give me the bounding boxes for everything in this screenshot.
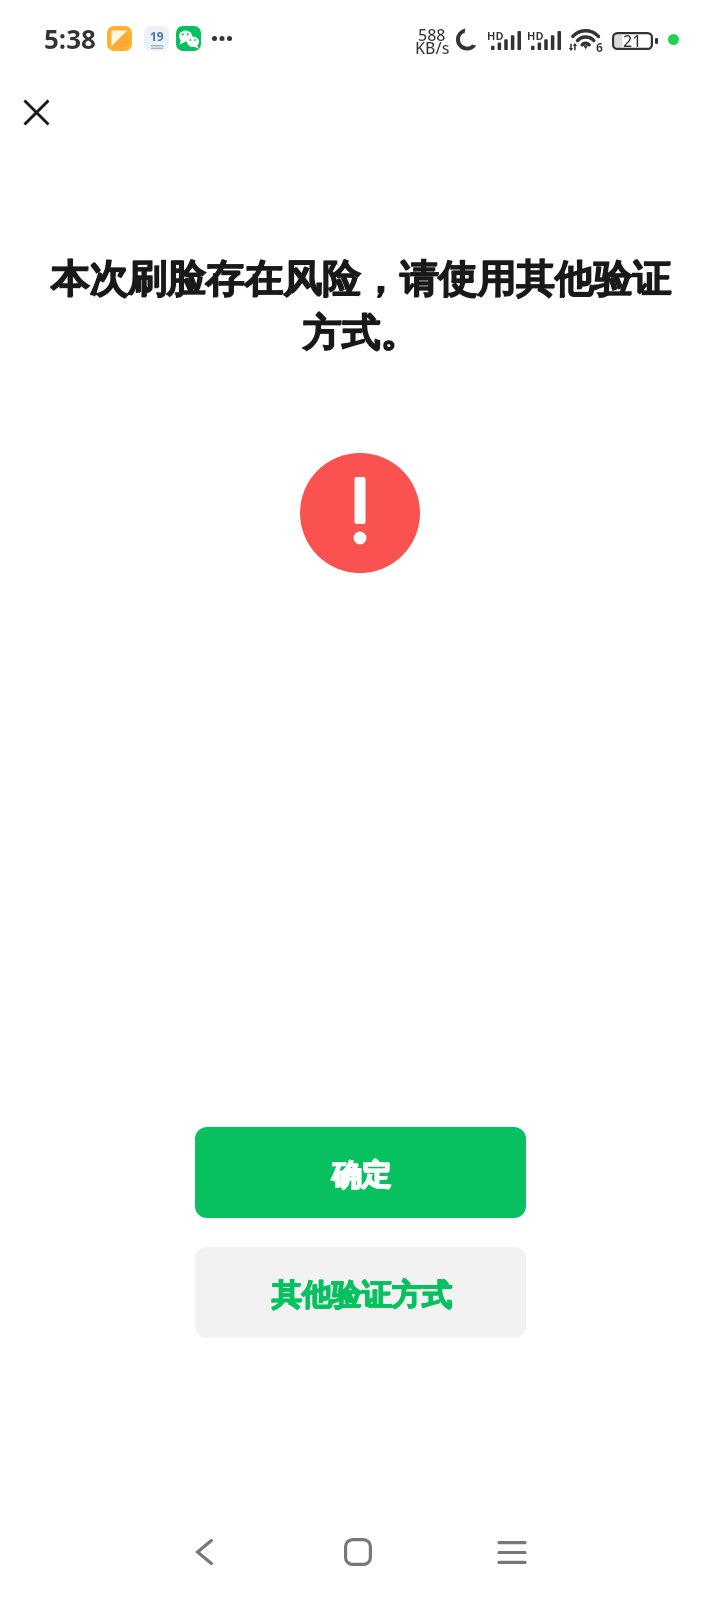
staticText: 确定 (332, 1156, 392, 1194)
staticText: 本次刷脸存在风险，请使用其他验证方式。 (38, 255, 682, 358)
staticText: 本次刷脸存在风险，请使用其他验证方式。 (39, 255, 683, 358)
staticText: 其他验证方式 (271, 1276, 451, 1314)
staticText: HD (527, 28, 544, 43)
staticText: 确定 (331, 1157, 391, 1195)
button[interactable]: Close (10, 86, 62, 138)
button[interactable]: 确定 (195, 1127, 526, 1218)
staticText: HD (487, 28, 504, 43)
staticText: 19 (150, 28, 164, 44)
button[interactable]: 其他验证方式 (195, 1247, 526, 1338)
button[interactable]: Recent apps (474, 1514, 550, 1590)
staticText: 本次刷脸存在风险，请使用其他验证方式。 (38, 256, 682, 359)
staticText: 21 (623, 30, 642, 52)
staticText: 其他验证方式 (272, 1276, 452, 1314)
staticText: 确定 (331, 1156, 391, 1194)
button[interactable]: Back (166, 1514, 242, 1590)
staticText: KB/s (415, 37, 450, 59)
staticText: 5:38 (44, 21, 96, 56)
staticText: 其他验证方式 (271, 1277, 451, 1315)
staticText: 6 (596, 39, 603, 55)
staticText: 588 (418, 24, 446, 46)
button[interactable]: Home (320, 1514, 396, 1590)
